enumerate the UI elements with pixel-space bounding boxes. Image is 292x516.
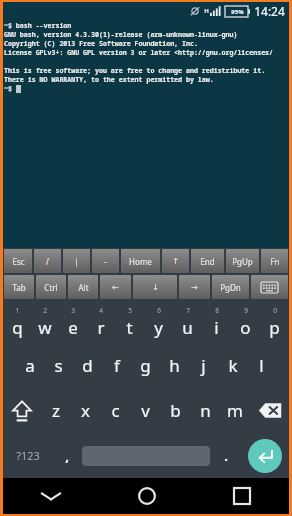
button[interactable]: Ctrl [36,275,66,299]
staticText: j [201,354,206,377]
staticText: , [65,447,69,465]
button[interactable]: → [179,275,210,299]
button[interactable]: g [131,343,160,388]
button[interactable]: Shift [3,388,41,433]
staticText: e [68,316,78,339]
staticText: l [259,354,264,377]
staticText: 8 [215,306,219,315]
button[interactable]: ↓ [133,275,177,299]
button[interactable]: 6 [144,303,173,343]
staticText: ?123 [16,448,40,463]
staticText: t [126,316,133,339]
button[interactable]: a [16,343,44,388]
staticText: . [224,447,228,465]
button[interactable]: f [102,343,131,388]
staticText: d [82,354,93,377]
staticText: Copyright (C) 2013 Free Software Foundat… [4,39,198,48]
button[interactable]: Recents [194,478,289,514]
staticText: ← [112,283,119,292]
button[interactable]: | [63,249,90,273]
staticText: Tab [12,282,26,293]
button[interactable]: z [41,388,70,433]
staticText: → [191,283,198,292]
staticText: k [228,354,238,377]
button[interactable]: ↑ [162,249,189,273]
button[interactable]: Home [99,478,194,514]
staticText: Esc [12,256,25,267]
staticText: n [200,399,211,422]
staticText: - [104,256,107,267]
button[interactable]: v [130,388,160,433]
staticText: p [269,316,280,339]
staticText: m [227,399,243,422]
button[interactable]: ~$ bash --version [3,20,289,248]
staticText: r [97,316,105,339]
button[interactable]: Tab [4,275,34,299]
button[interactable]: j [189,343,218,388]
staticText: PgUp [232,256,253,267]
staticText: w [38,316,52,339]
staticText: i [214,316,219,339]
staticText: GNU bash, version 4.3.30(1)-release (arm… [4,30,238,39]
button[interactable]: Enter [248,439,282,473]
button[interactable]: - [92,249,119,273]
staticText: Alt [78,282,89,293]
staticText: PgDn [220,282,241,293]
staticText: h [169,354,180,377]
button[interactable]: Home [121,249,160,273]
staticText: 3 [71,306,75,315]
button[interactable]: Fn [261,249,288,273]
staticText: y [154,316,163,339]
staticText: | [74,256,79,267]
button[interactable]: s [44,343,73,388]
button[interactable]: 4 [87,303,115,343]
button[interactable]: d [73,343,102,388]
staticText: q [12,316,23,339]
button[interactable]: c [100,388,130,433]
button[interactable]: 5 [115,303,144,343]
button[interactable]: 2 [31,303,59,343]
staticText: H [204,7,209,15]
button[interactable]: Backspace [250,388,289,433]
button[interactable]: End [191,249,224,273]
button[interactable]: PgDn [212,275,249,299]
button[interactable]: m [220,388,250,433]
button[interactable]: Esc [4,249,32,273]
button[interactable]: 3 [59,303,87,343]
button[interactable]: ?123 [3,433,52,478]
staticText: b [170,399,181,422]
button[interactable]: 1 [3,303,31,343]
staticText: ↓ [152,283,159,292]
button[interactable]: Hide keyboard [251,275,288,299]
staticText: 0 [273,306,277,315]
staticText: s [54,354,63,377]
button[interactable]: x [70,388,100,433]
button[interactable]: k [218,343,247,388]
staticText: Ctrl [44,282,58,293]
button[interactable]: . [211,433,240,478]
button[interactable]: / [34,249,61,273]
staticText: 4 [99,306,103,315]
staticText: 6 [157,306,161,315]
button[interactable]: PgUp [226,249,259,273]
staticText: ↑ [172,257,179,266]
button[interactable]: 7 [173,303,202,343]
staticText: This is free software; you are free to c… [4,66,266,75]
staticText: 7 [186,306,190,315]
button[interactable]: 8 [202,303,231,343]
button[interactable]: n [190,388,220,433]
staticText: 9 [244,306,248,315]
button[interactable]: b [160,388,190,433]
button[interactable]: 0 [260,303,289,343]
button[interactable]: h [160,343,189,388]
staticText: 14:24 [254,3,285,19]
button[interactable]: ← [100,275,131,299]
staticText: 5 [128,306,132,315]
button[interactable]: Alt [68,275,98,299]
button[interactable]: l [247,343,276,388]
button[interactable]: , [52,433,81,478]
button[interactable]: 9 [231,303,260,343]
staticText: v [141,399,150,422]
button[interactable]: Back [3,478,99,514]
